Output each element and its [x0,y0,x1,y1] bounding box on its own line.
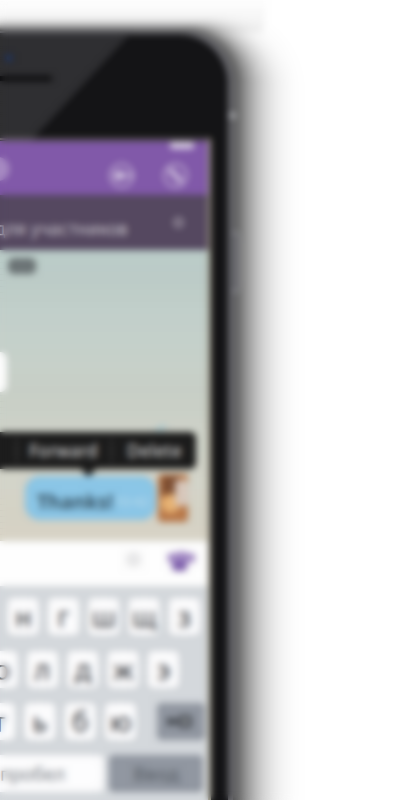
button[interactable]: б [65,703,96,740]
staticText: э [157,652,170,687]
staticText: г [58,599,70,634]
button[interactable]: Stickers [165,549,195,573]
staticText: Delete [127,439,182,462]
staticText: о [0,652,10,687]
button[interactable]: о [0,651,18,688]
button[interactable]: Dismiss banner [172,216,185,229]
button[interactable]: ю [105,703,136,740]
button[interactable]: д [67,651,98,688]
button[interactable]: ж [108,651,139,688]
button[interactable]: ш [88,598,119,635]
button[interactable]: Add attachment [126,552,141,567]
staticText: скрыт для участников [0,217,128,240]
button[interactable]: л [27,651,58,688]
staticText: ш [92,599,116,634]
button[interactable]: Delete [112,432,197,469]
button[interactable]: н [8,598,39,635]
staticText: б [72,704,88,739]
staticText: пробел [0,761,65,786]
staticText: Forward [29,439,98,462]
button[interactable]: Ввод [109,755,203,792]
staticText: 10:42 [113,491,149,510]
button[interactable]: г [48,598,79,635]
staticText: ю [110,704,131,739]
staticText: з [178,599,191,634]
button[interactable]: э [148,651,179,688]
staticText: д [75,652,91,687]
button[interactable]: Voice call [163,163,188,188]
button[interactable]: щ [129,598,160,635]
staticText: т [0,704,6,739]
button[interactable]: ь [24,703,55,740]
staticText: л [35,652,51,687]
button[interactable]: з [169,598,200,635]
staticText: ж [113,652,133,687]
button[interactable]: т [0,703,15,740]
button[interactable]: Video call [109,163,134,188]
staticText: Thanks! [37,488,114,515]
button[interactable]: пробел [0,755,104,792]
staticText: ь [32,704,47,739]
staticText: Ввод [133,761,178,786]
button[interactable]: Backspace [157,703,205,740]
button[interactable]: Forward [16,432,111,469]
staticText: н [15,599,31,634]
staticText: щ [132,599,156,634]
